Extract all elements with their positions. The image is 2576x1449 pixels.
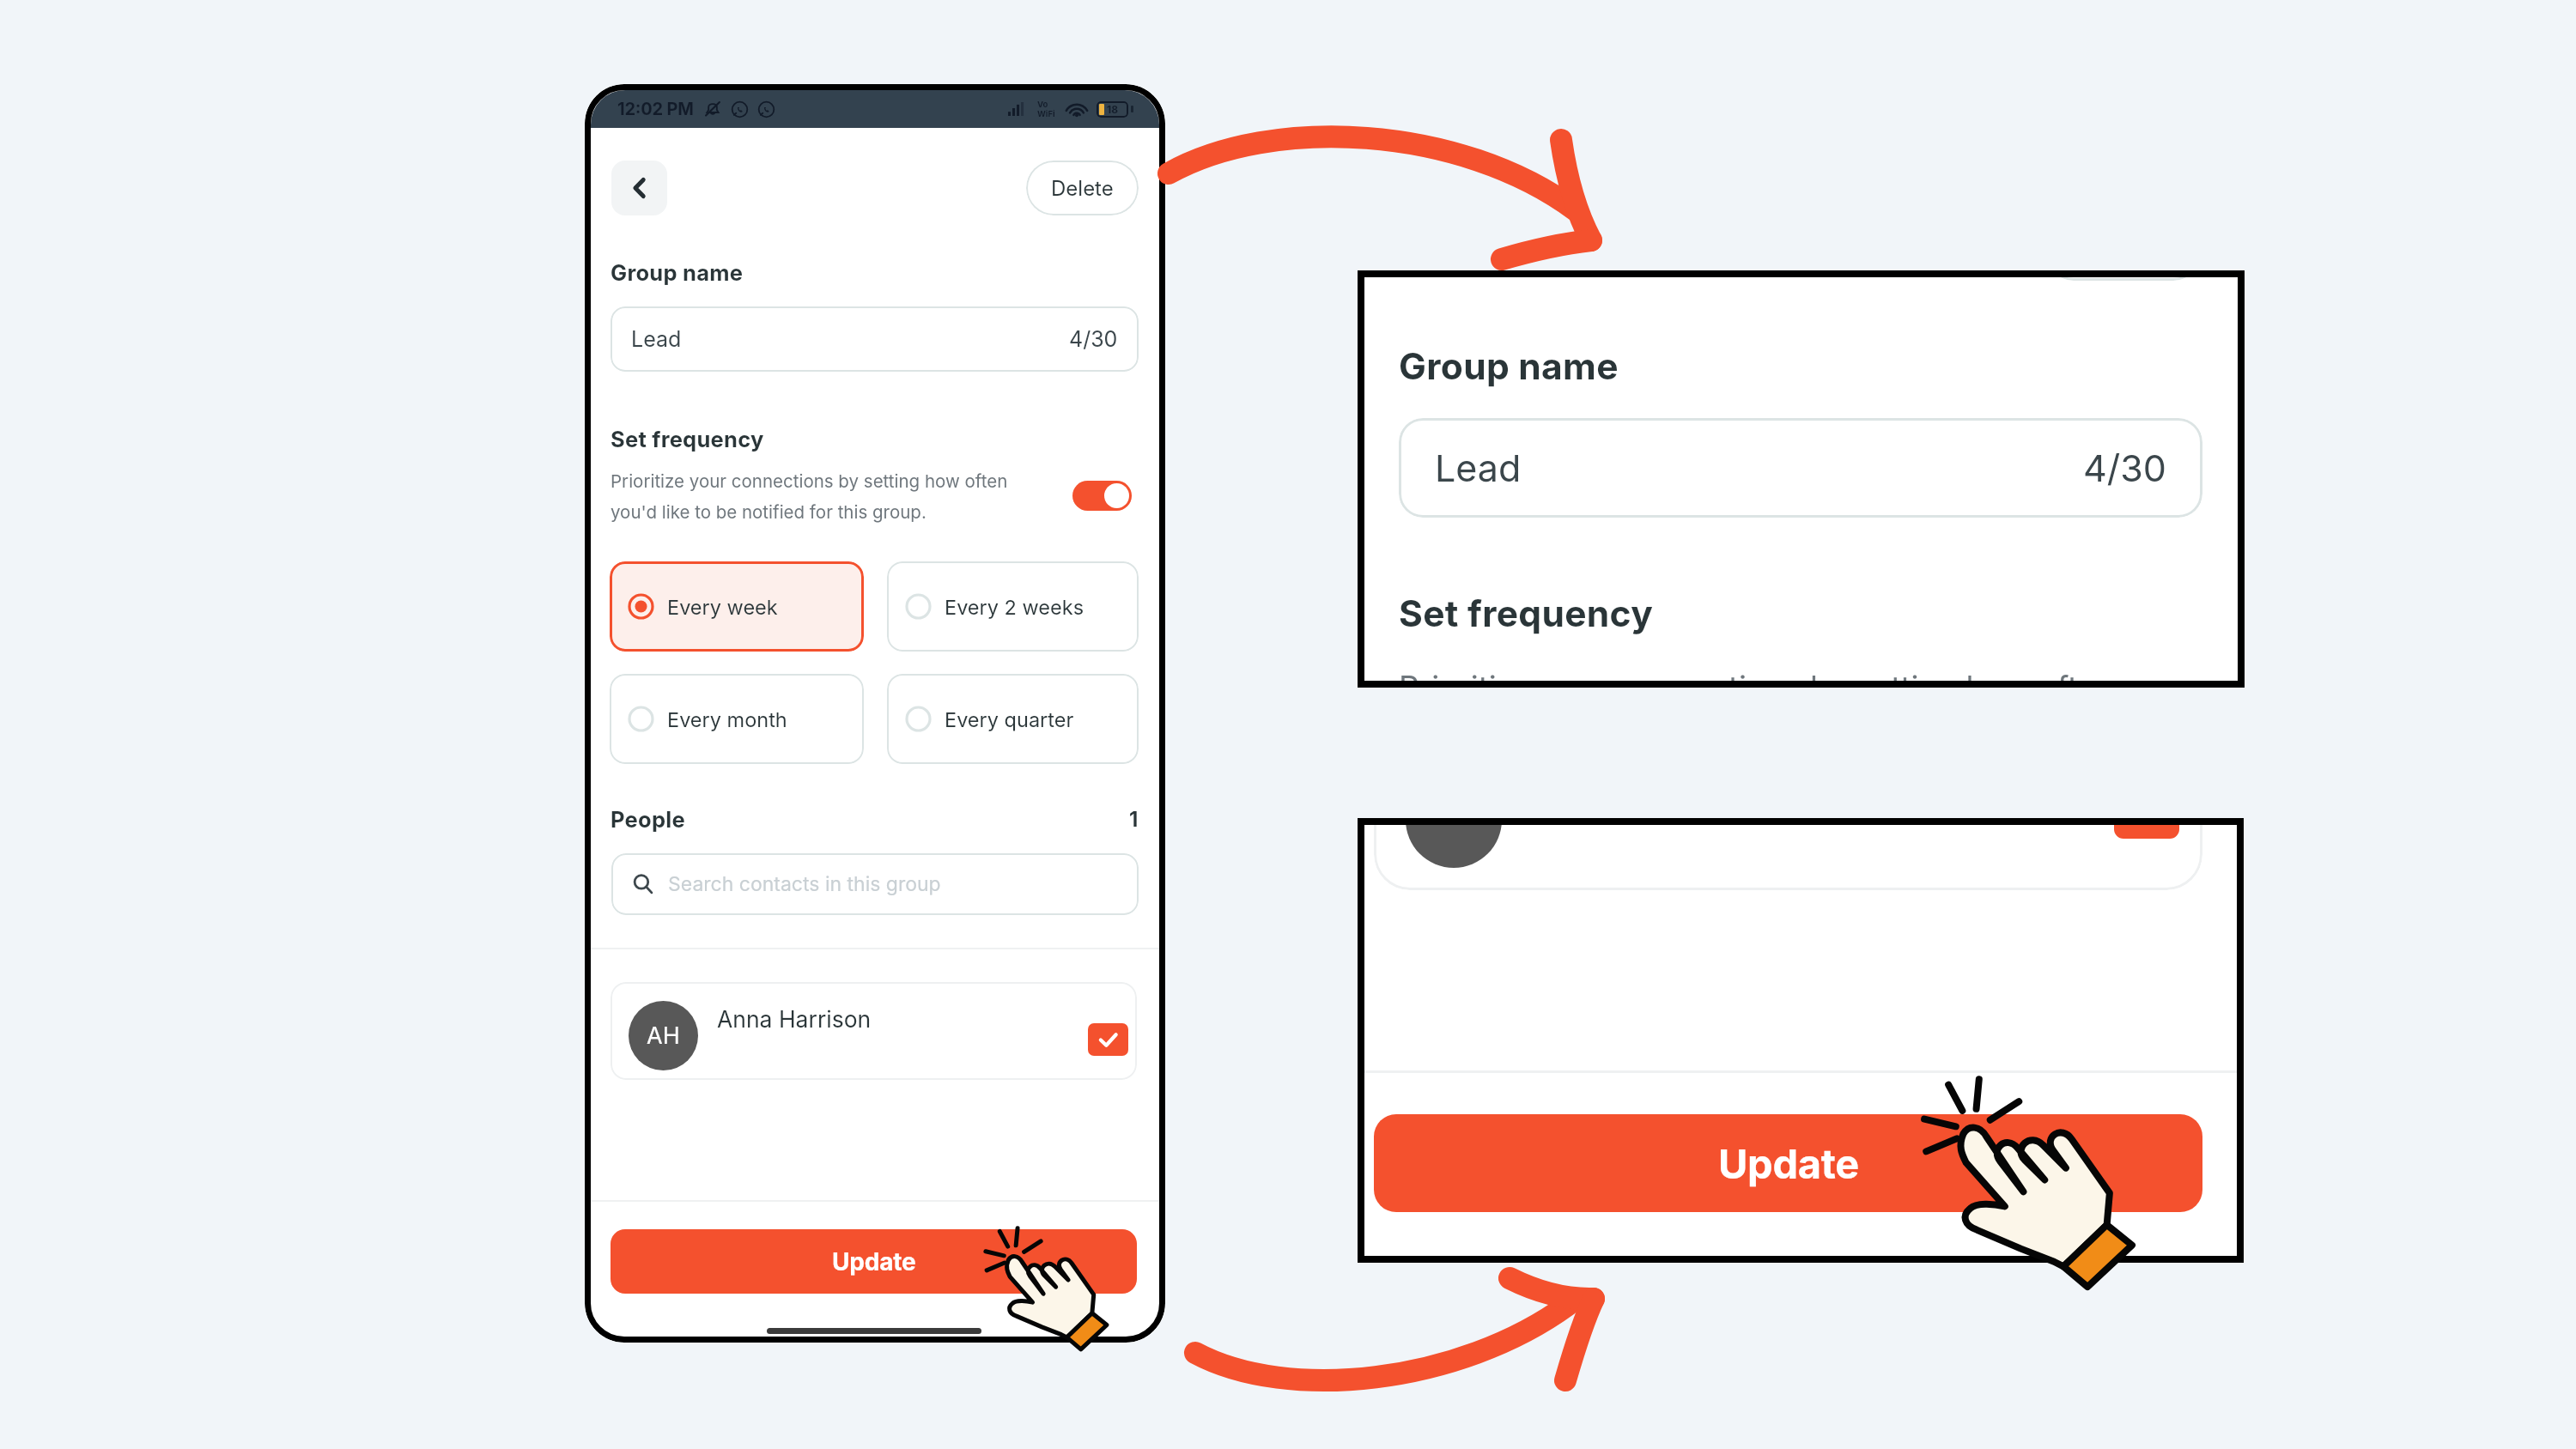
staticText: Delete xyxy=(1051,176,1114,201)
staticText: WiFi xyxy=(1037,109,1055,118)
button[interactable]: Delete xyxy=(1026,161,1139,215)
button[interactable]: Every month xyxy=(610,674,864,764)
staticText: Prioritize your connections by setting h… xyxy=(611,470,1057,523)
staticText: Every month xyxy=(667,707,787,731)
staticText: Group name xyxy=(611,259,744,286)
staticText: 4/30 xyxy=(2083,446,2166,490)
button[interactable]: Every quarter xyxy=(887,674,1139,764)
button[interactable]: Update xyxy=(611,1229,1137,1294)
staticText: Update xyxy=(832,1247,916,1276)
staticText: 18 xyxy=(1107,103,1118,116)
staticText: People xyxy=(611,806,685,833)
staticText: Set frequency xyxy=(1399,591,1654,635)
staticText: 12:02 PM xyxy=(617,99,694,119)
button[interactable]: Notification toggle xyxy=(1072,481,1132,511)
staticText: AH xyxy=(647,1022,680,1050)
button[interactable]: AH xyxy=(629,982,1123,1080)
staticText: Every quarter xyxy=(945,707,1074,731)
button[interactable]: Anna Harrison selected xyxy=(1088,1023,1128,1056)
staticText: 1 xyxy=(1129,807,1139,832)
staticText: Lead xyxy=(1435,446,1522,490)
button[interactable]: Back xyxy=(611,161,667,215)
staticText: Every week xyxy=(667,595,778,619)
staticText: Anna Harrison xyxy=(717,1005,872,1033)
button[interactable]: Every 2 weeks xyxy=(887,561,1139,652)
staticText: Search contacts in this group xyxy=(668,872,941,896)
button[interactable]: Lead xyxy=(631,306,1118,372)
staticText: Set frequency xyxy=(611,426,764,452)
staticText: Update xyxy=(1718,1139,1859,1188)
staticText: Lead xyxy=(631,326,682,352)
button[interactable]: Lead xyxy=(1435,418,2166,518)
staticText: Group name xyxy=(1399,344,1619,388)
staticText: 4/30 xyxy=(1069,326,1118,352)
staticText: Vo xyxy=(1037,100,1048,109)
button[interactable]: Search contacts in this group xyxy=(632,853,1118,915)
button[interactable]: Every week xyxy=(610,561,864,652)
button[interactable]: Update xyxy=(1374,1114,2202,1212)
staticText: Prioritize your connections by setting h… xyxy=(1399,668,2116,688)
staticText: Every 2 weeks xyxy=(945,595,1084,619)
